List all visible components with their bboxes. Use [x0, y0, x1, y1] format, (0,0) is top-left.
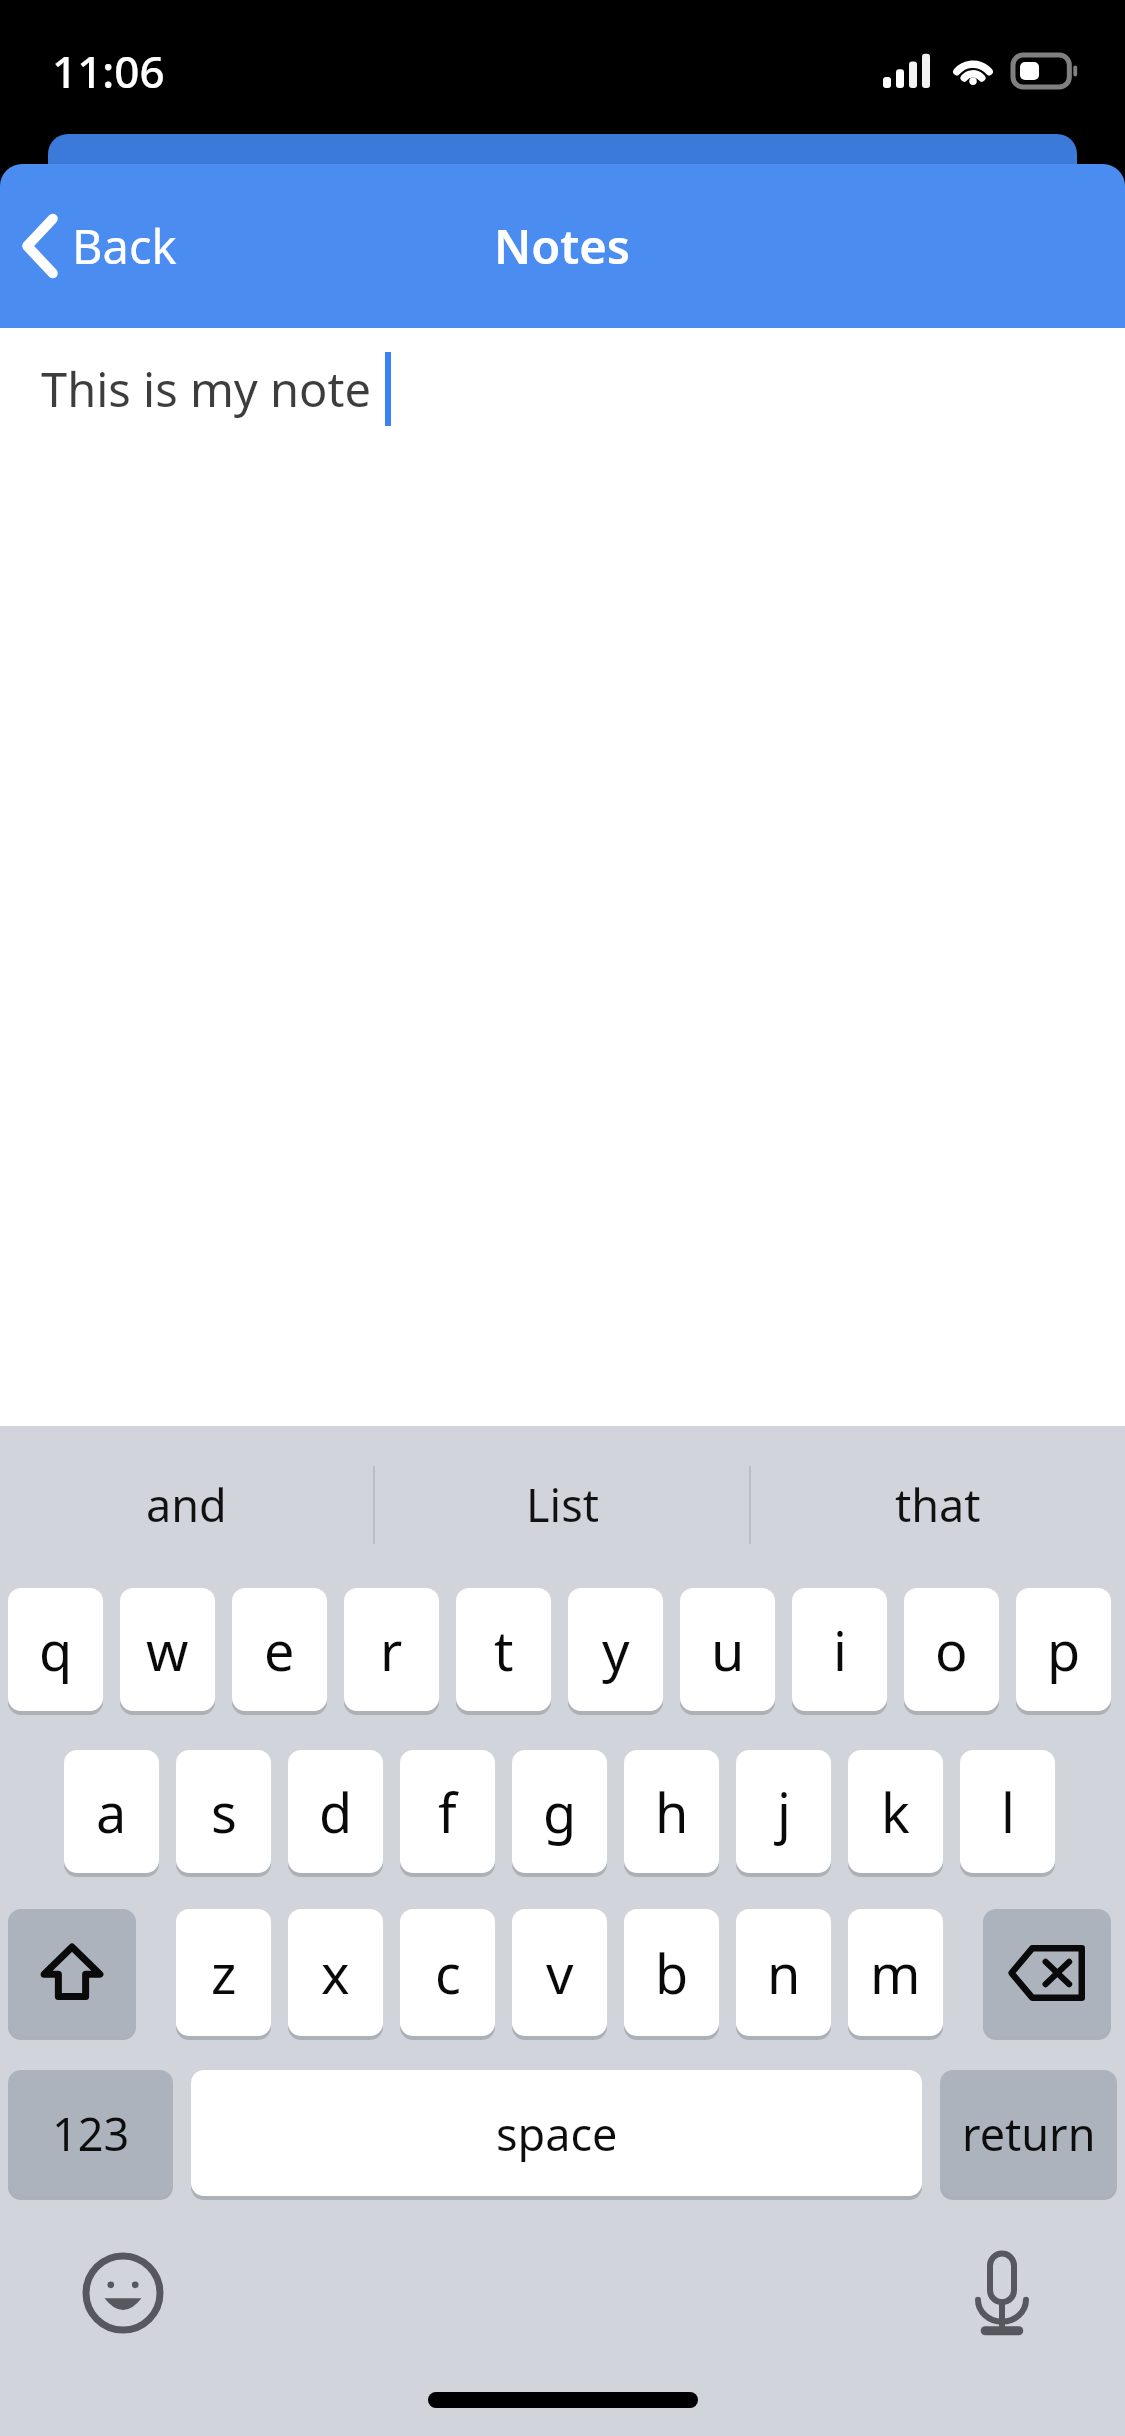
- button[interactable]: w: [120, 1588, 215, 1711]
- staticText: l: [1001, 1775, 1015, 1849]
- button[interactable]: u: [680, 1588, 775, 1711]
- staticText: w: [146, 1613, 189, 1687]
- button[interactable]: g: [512, 1750, 607, 1873]
- button[interactable]: Emoji: [62, 2232, 184, 2354]
- staticText: List: [526, 1474, 599, 1535]
- staticText: This is my note: [41, 357, 371, 421]
- staticText: p: [1047, 1613, 1081, 1687]
- staticText: v: [546, 1936, 574, 2010]
- button[interactable]: f: [400, 1750, 495, 1873]
- staticText: Notes: [494, 214, 631, 278]
- button[interactable]: k: [848, 1750, 943, 1873]
- button[interactable]: d: [288, 1750, 383, 1873]
- button[interactable]: j: [736, 1750, 831, 1873]
- staticText: z: [211, 1936, 237, 2010]
- staticText: y: [602, 1613, 630, 1687]
- button[interactable]: o: [904, 1588, 999, 1711]
- staticText: e: [264, 1613, 295, 1687]
- button[interactable]: Dictation: [941, 2232, 1063, 2354]
- staticText: Back: [72, 214, 177, 278]
- button[interactable]: y: [568, 1588, 663, 1711]
- button[interactable]: Backspace: [983, 1909, 1111, 2036]
- button[interactable]: that: [751, 1426, 1125, 1583]
- staticText: r: [380, 1613, 403, 1687]
- button[interactable]: m: [848, 1909, 943, 2036]
- button[interactable]: return: [940, 2070, 1117, 2196]
- button[interactable]: e: [232, 1588, 327, 1711]
- staticText: j: [777, 1775, 791, 1849]
- button[interactable]: p: [1016, 1588, 1111, 1711]
- button[interactable]: t: [456, 1588, 551, 1711]
- staticText: q: [39, 1613, 73, 1687]
- button[interactable]: a: [64, 1750, 159, 1873]
- button[interactable]: q: [8, 1588, 103, 1711]
- button[interactable]: This is my note: [0, 328, 1125, 1426]
- button[interactable]: v: [512, 1909, 607, 2036]
- staticText: k: [881, 1775, 910, 1849]
- staticText: x: [321, 1936, 350, 2010]
- staticText: u: [711, 1613, 745, 1687]
- staticText: space: [496, 2103, 618, 2164]
- staticText: n: [767, 1936, 801, 2010]
- staticText: m: [870, 1936, 921, 2010]
- staticText: h: [655, 1775, 689, 1849]
- staticText: a: [96, 1775, 127, 1849]
- staticText: c: [435, 1936, 461, 2010]
- staticText: o: [935, 1613, 968, 1687]
- staticText: that: [895, 1474, 981, 1535]
- button[interactable]: r: [344, 1588, 439, 1711]
- button[interactable]: i: [792, 1588, 887, 1711]
- staticText: 11:06: [52, 41, 165, 101]
- staticText: g: [543, 1775, 577, 1849]
- button[interactable]: z: [176, 1909, 271, 2036]
- button[interactable]: h: [624, 1750, 719, 1873]
- staticText: d: [319, 1775, 353, 1849]
- button[interactable]: space: [191, 2070, 922, 2196]
- button[interactable]: b: [624, 1909, 719, 2036]
- staticText: b: [655, 1936, 689, 2010]
- button[interactable]: x: [288, 1909, 383, 2036]
- button[interactable]: s: [176, 1750, 271, 1873]
- button[interactable]: List: [375, 1426, 749, 1583]
- button[interactable]: Shift: [8, 1909, 136, 2036]
- button[interactable]: Back: [10, 200, 187, 292]
- button[interactable]: and: [0, 1426, 373, 1583]
- staticText: 123: [52, 2103, 130, 2164]
- staticText: t: [494, 1613, 514, 1687]
- staticText: return: [962, 2103, 1096, 2164]
- button[interactable]: c: [400, 1909, 495, 2036]
- staticText: s: [211, 1775, 237, 1849]
- staticText: and: [146, 1474, 227, 1535]
- staticText: i: [833, 1613, 847, 1687]
- button[interactable]: 123: [8, 2070, 173, 2196]
- button[interactable]: n: [736, 1909, 831, 2036]
- button[interactable]: l: [960, 1750, 1055, 1873]
- staticText: f: [438, 1775, 457, 1849]
